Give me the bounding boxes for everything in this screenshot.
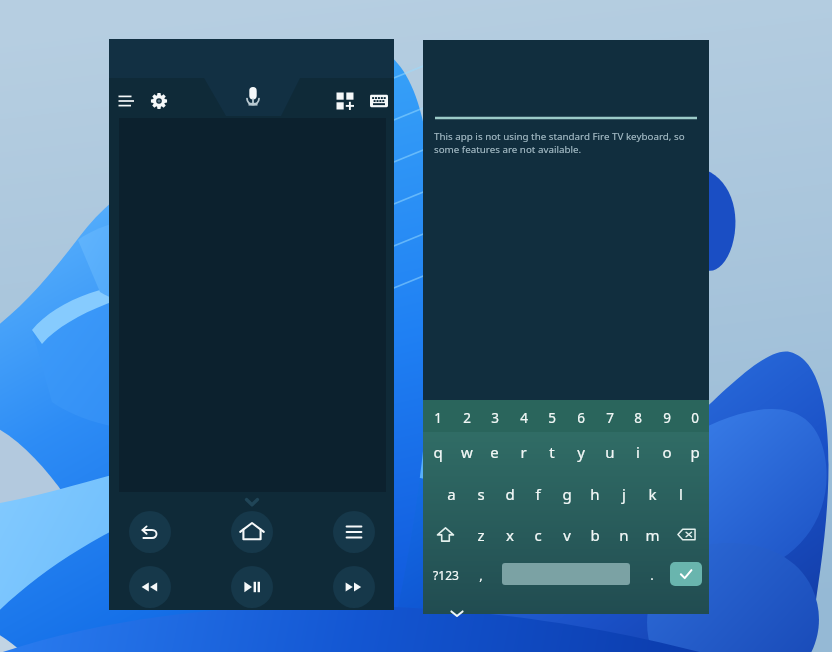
staticText: , <box>479 566 483 584</box>
button[interactable]: i <box>623 431 652 472</box>
button[interactable]: Fast forward <box>333 566 375 608</box>
staticText: x <box>506 525 514 545</box>
button[interactable]: b <box>580 514 609 555</box>
button[interactable]: Back <box>129 511 171 553</box>
staticText: z <box>477 525 485 545</box>
staticText: r <box>520 442 527 462</box>
button[interactable]: g <box>552 473 581 514</box>
button[interactable]: 4 <box>509 397 538 438</box>
button[interactable]: 0 <box>680 397 709 438</box>
button[interactable]: s <box>466 473 495 514</box>
button[interactable]: k <box>638 473 667 514</box>
button[interactable]: Collapse <box>241 494 263 510</box>
button[interactable]: ?123 <box>431 554 460 595</box>
button[interactable]: Menu button <box>333 511 375 553</box>
button[interactable]: 9 <box>652 397 681 438</box>
button[interactable]: Settings <box>144 82 174 120</box>
staticText: b <box>590 525 600 545</box>
button[interactable]: , <box>466 554 495 595</box>
button[interactable]: Keyboard <box>362 82 396 120</box>
button[interactable]: d <box>495 473 524 514</box>
button[interactable]: q <box>423 431 452 472</box>
staticText: o <box>662 442 672 462</box>
button[interactable]: 7 <box>595 397 624 438</box>
staticText: v <box>563 525 571 545</box>
staticText: 6 <box>577 409 585 427</box>
button[interactable]: 3 <box>480 397 509 438</box>
button[interactable]: Rewind <box>129 566 171 608</box>
staticText: h <box>590 484 600 504</box>
button[interactable]: o <box>652 431 681 472</box>
staticText: f <box>535 484 541 504</box>
button[interactable]: 6 <box>566 397 595 438</box>
button[interactable]: a <box>437 473 466 514</box>
staticText: 7 <box>606 409 614 427</box>
button[interactable]: Space <box>502 563 630 585</box>
staticText: c <box>534 525 542 545</box>
staticText: t <box>549 442 555 462</box>
staticText: 0 <box>691 409 699 427</box>
button[interactable]: Add apps <box>330 82 360 120</box>
button[interactable]: l <box>666 473 695 514</box>
staticText: ?123 <box>433 567 459 583</box>
button[interactable]: Voice search <box>236 78 270 116</box>
staticText: q <box>433 442 443 462</box>
staticText: . <box>650 566 654 584</box>
button[interactable]: e <box>480 431 509 472</box>
staticText: 8 <box>634 409 642 427</box>
staticText: 4 <box>520 409 528 427</box>
button[interactable]: Play pause <box>231 566 273 608</box>
button[interactable]: u <box>595 431 624 472</box>
button[interactable]: m <box>638 514 667 555</box>
staticText: 5 <box>548 409 556 427</box>
staticText: 9 <box>663 409 671 427</box>
staticText: j <box>622 484 626 504</box>
button[interactable]: Home <box>231 511 273 553</box>
staticText: n <box>619 525 629 545</box>
staticText: l <box>679 484 683 504</box>
staticText: m <box>645 525 660 545</box>
staticText: k <box>648 484 657 504</box>
button[interactable]: h <box>580 473 609 514</box>
staticText: w <box>461 442 473 462</box>
button[interactable]: p <box>680 431 709 472</box>
button[interactable]: 5 <box>537 397 566 438</box>
staticText: This app is not using the standard Fire … <box>434 130 686 156</box>
staticText: 2 <box>463 409 471 427</box>
button[interactable]: c <box>523 514 552 555</box>
button[interactable]: Backspace <box>672 514 701 555</box>
button[interactable]: r <box>509 431 538 472</box>
button[interactable]: z <box>466 514 495 555</box>
button[interactable]: Menu <box>111 82 141 120</box>
button[interactable]: 1 <box>423 397 452 438</box>
staticText: d <box>505 484 515 504</box>
staticText: e <box>490 442 499 462</box>
button[interactable]: 8 <box>623 397 652 438</box>
staticText: s <box>477 484 485 504</box>
button[interactable]: Shift <box>431 514 460 555</box>
button[interactable]: v <box>552 514 581 555</box>
button[interactable]: . <box>637 554 666 595</box>
button[interactable]: x <box>495 514 524 555</box>
staticText: i <box>636 442 640 462</box>
button[interactable]: n <box>609 514 638 555</box>
staticText: y <box>577 442 585 462</box>
button[interactable]: f <box>523 473 552 514</box>
staticText: 3 <box>491 409 499 427</box>
button[interactable]: Enter <box>670 562 702 586</box>
staticText: a <box>447 484 456 504</box>
staticText: g <box>562 484 572 504</box>
staticText: u <box>605 442 615 462</box>
button[interactable]: Hide keyboard <box>447 608 467 618</box>
staticText: p <box>690 442 700 462</box>
button[interactable]: w <box>452 431 481 472</box>
button[interactable]: j <box>609 473 638 514</box>
button[interactable]: t <box>537 431 566 472</box>
staticText: 1 <box>434 409 442 427</box>
button[interactable]: y <box>566 431 595 472</box>
button[interactable]: 2 <box>452 397 481 438</box>
